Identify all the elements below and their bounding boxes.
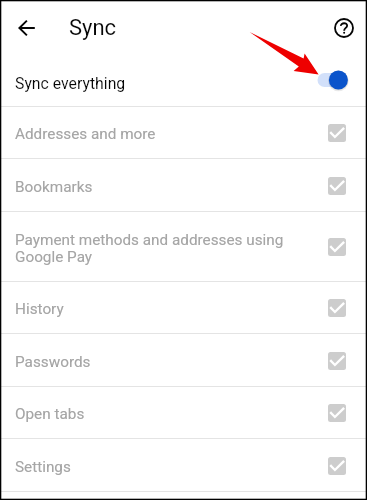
staticText: Payment methods and addresses using Goog… [15, 231, 284, 266]
button[interactable]: Bookmarks [0, 159, 367, 212]
button[interactable]: Help [324, 8, 364, 48]
button[interactable]: Payment methods and addresses using Goog… [0, 212, 367, 282]
staticText: Open tabs [15, 405, 85, 423]
button[interactable]: Settings [0, 439, 367, 492]
staticText: Sync [69, 15, 117, 41]
staticText: Bookmarks [15, 178, 93, 196]
button[interactable]: Open tabs [0, 387, 367, 439]
staticText: Sync everything [15, 74, 126, 93]
button[interactable]: Passwords [0, 334, 367, 387]
staticText: History [15, 300, 64, 318]
staticText: Passwords [15, 353, 91, 371]
button[interactable]: History [0, 282, 367, 334]
button[interactable]: Addresses and more [0, 107, 367, 159]
staticText: Settings [15, 458, 71, 476]
staticText: Addresses and more [15, 125, 156, 143]
button[interactable]: Sync everything [0, 57, 367, 107]
button[interactable]: Back [7, 8, 47, 48]
